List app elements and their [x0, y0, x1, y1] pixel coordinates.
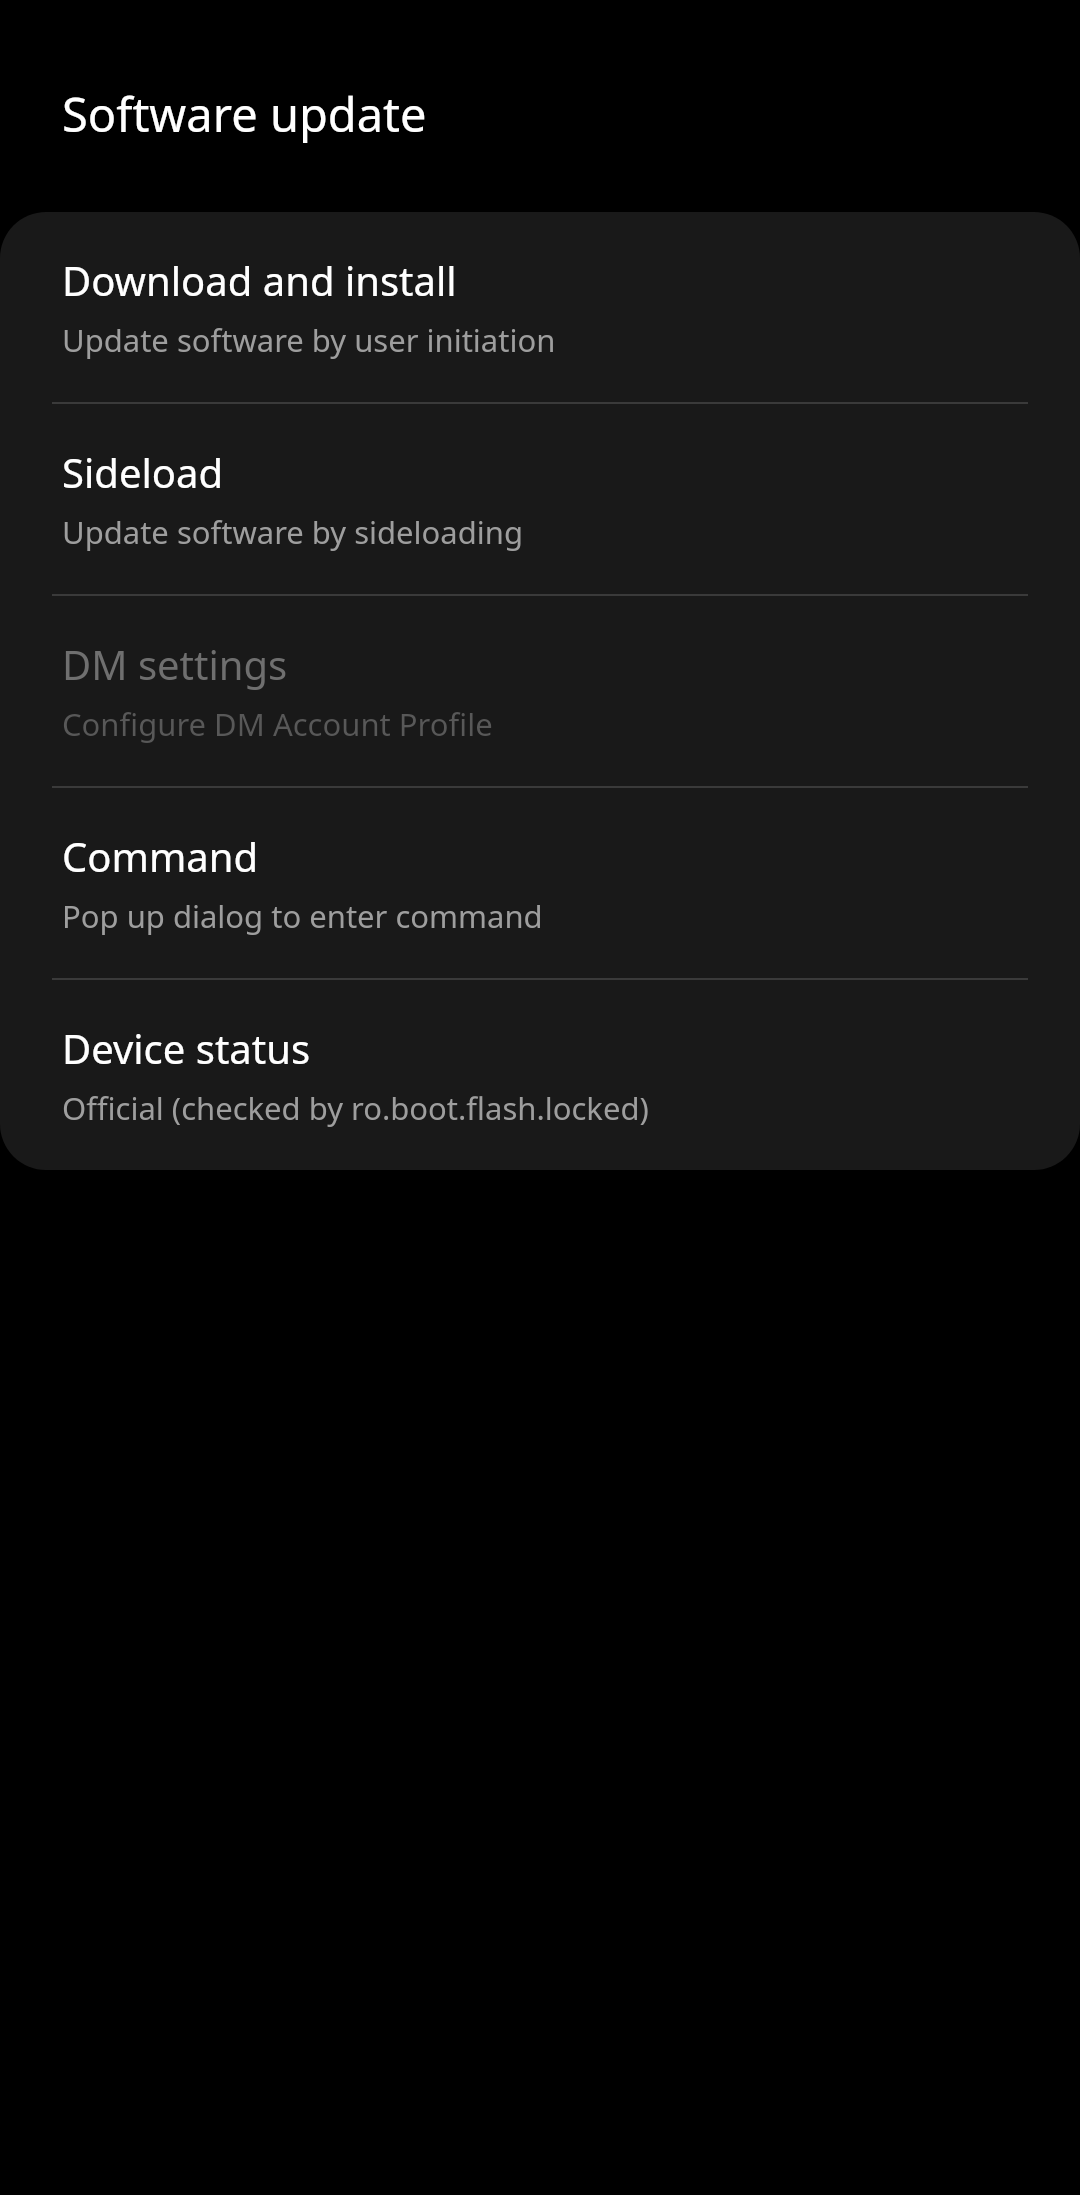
- staticText: Pop up dialog to enter command: [62, 895, 543, 937]
- staticText: Software update: [62, 82, 427, 146]
- button[interactable]: Command: [0, 788, 1080, 978]
- staticText: Configure DM Account Profile: [62, 703, 493, 745]
- staticText: Device status: [62, 1021, 311, 1075]
- staticText: Update software by sideloading: [62, 511, 523, 553]
- staticText: Update software by user initiation: [62, 319, 556, 361]
- button[interactable]: Download and install: [0, 212, 1080, 402]
- staticText: Download and install: [62, 253, 457, 307]
- button[interactable]: Sideload: [0, 404, 1080, 594]
- staticText: Command: [62, 829, 259, 883]
- staticText: DM settings: [62, 637, 288, 691]
- button[interactable]: Device status: [0, 980, 1080, 1170]
- staticText: Sideload: [62, 445, 223, 499]
- staticText: Official (checked by ro.boot.flash.locke…: [62, 1087, 649, 1129]
- button[interactable]: DM settings: [0, 596, 1080, 786]
